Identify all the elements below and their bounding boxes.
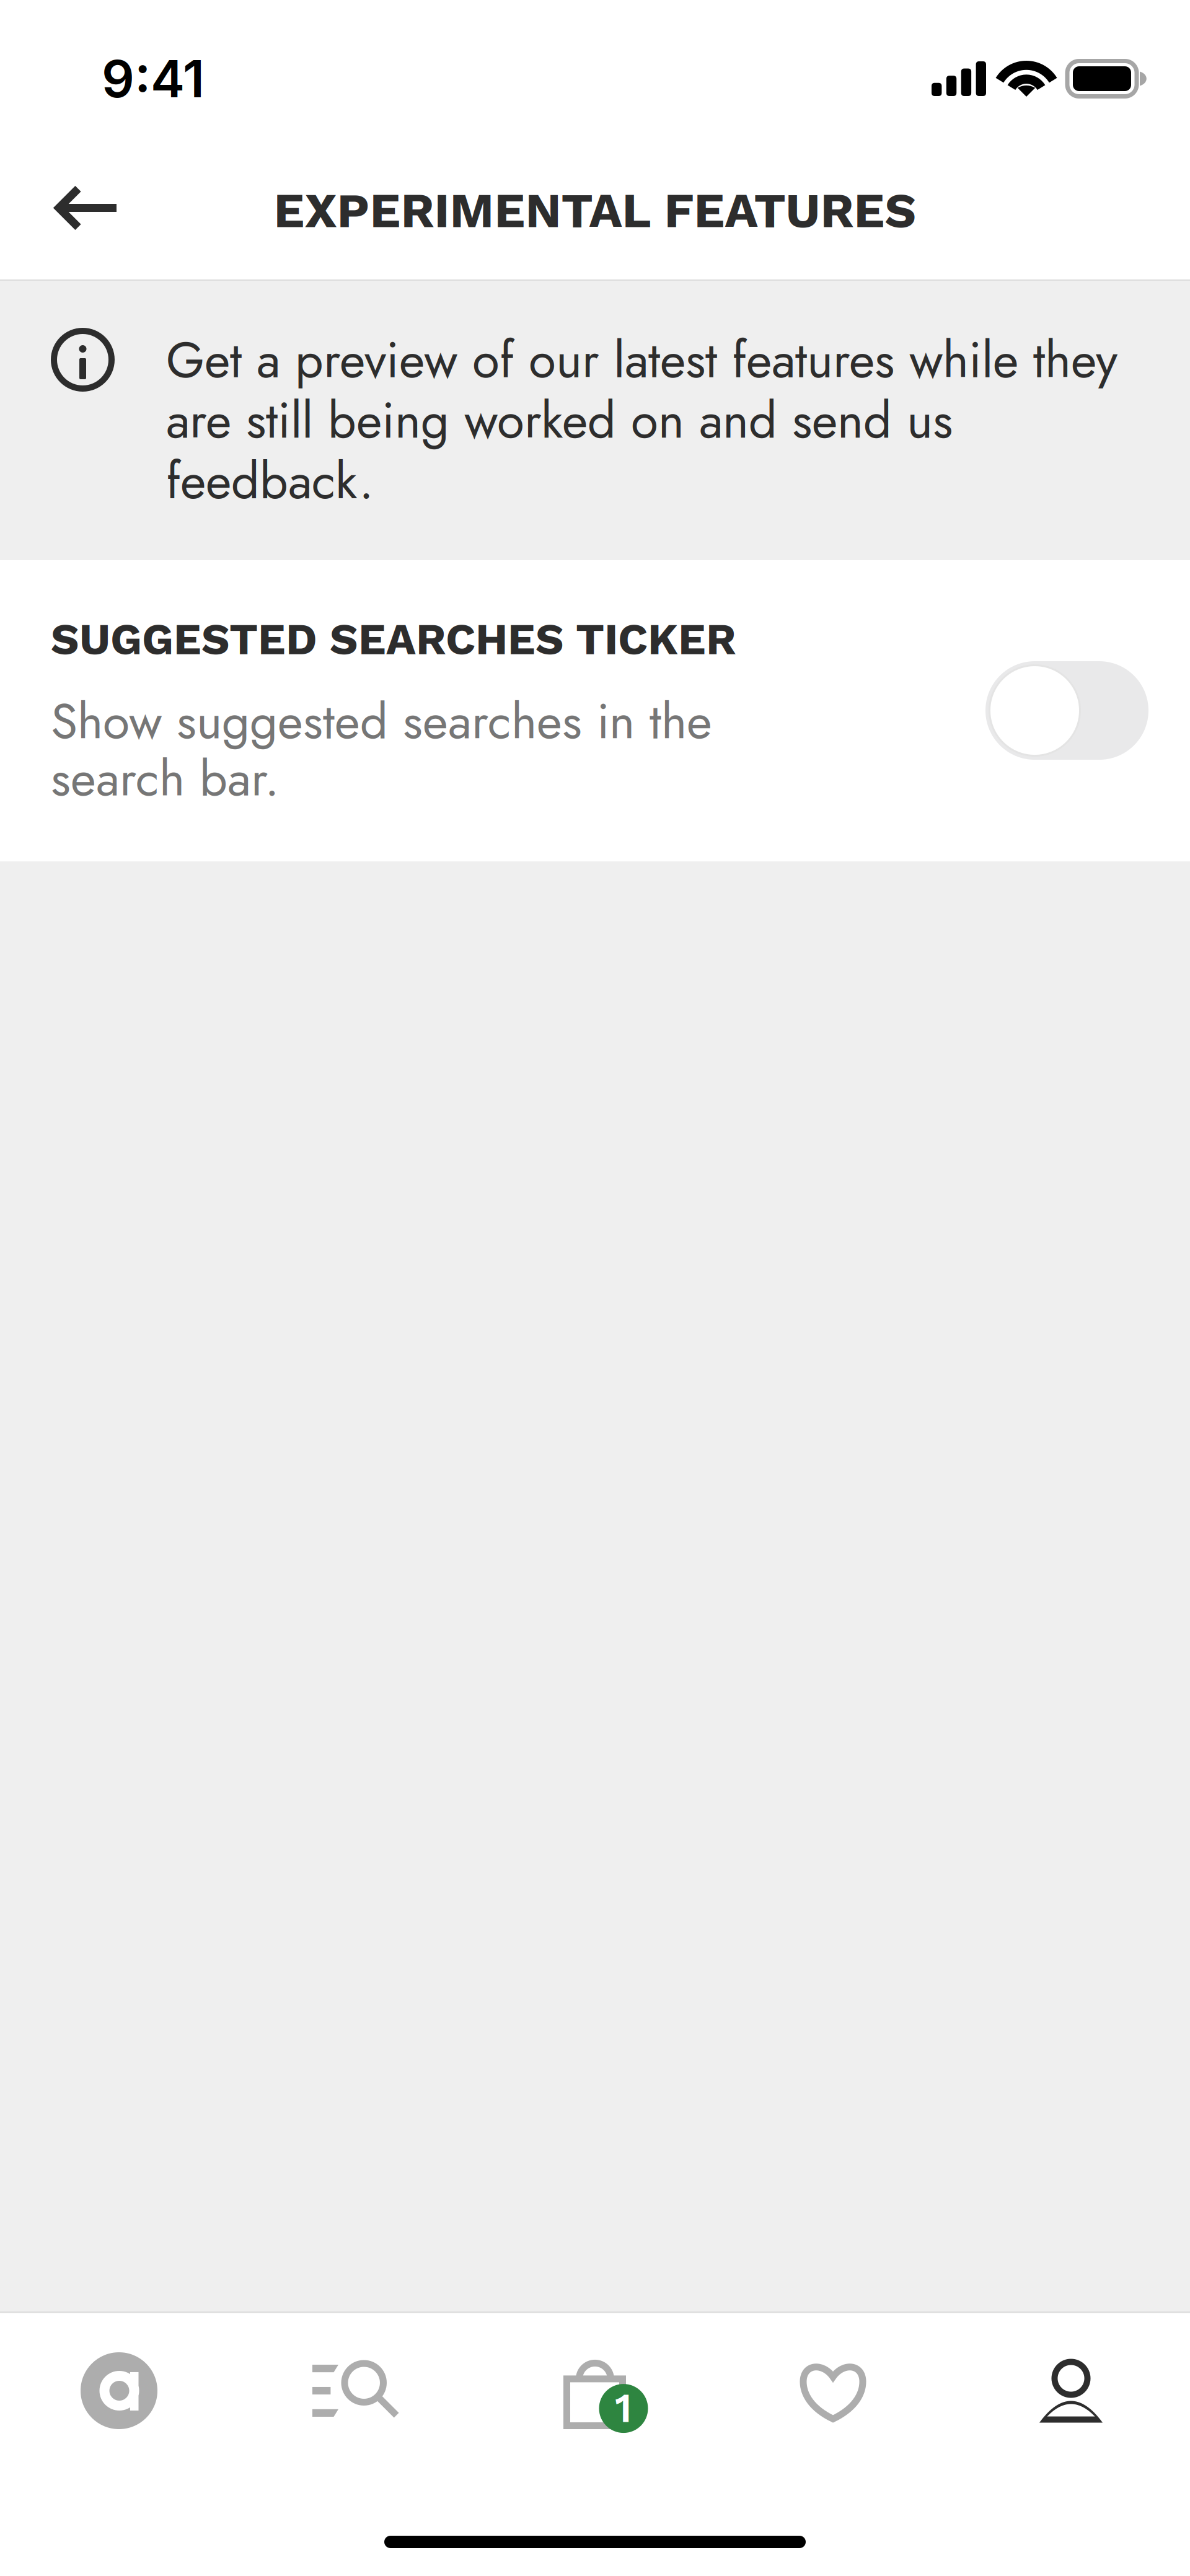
button[interactable]: Bag, 1 item <box>476 2313 714 2460</box>
staticText: Show suggested searches in the search ba… <box>51 693 712 807</box>
staticText: EXPERIMENTAL FEATURES <box>274 182 916 239</box>
button[interactable]: Back <box>9 157 151 263</box>
staticText: 1 <box>615 2384 632 2432</box>
button[interactable]: SUGGESTED SEARCHES TICKER <box>0 560 1190 861</box>
staticText: SUGGESTED SEARCHES TICKER <box>51 613 736 665</box>
staticText: 9:41 <box>102 48 205 110</box>
button[interactable]: Saved items <box>714 2313 952 2460</box>
button[interactable]: Search <box>238 2313 476 2460</box>
button[interactable]: Home <box>0 2313 238 2460</box>
staticText: Get a preview of our latest features whi… <box>166 330 1117 511</box>
button[interactable]: My account <box>952 2313 1190 2460</box>
